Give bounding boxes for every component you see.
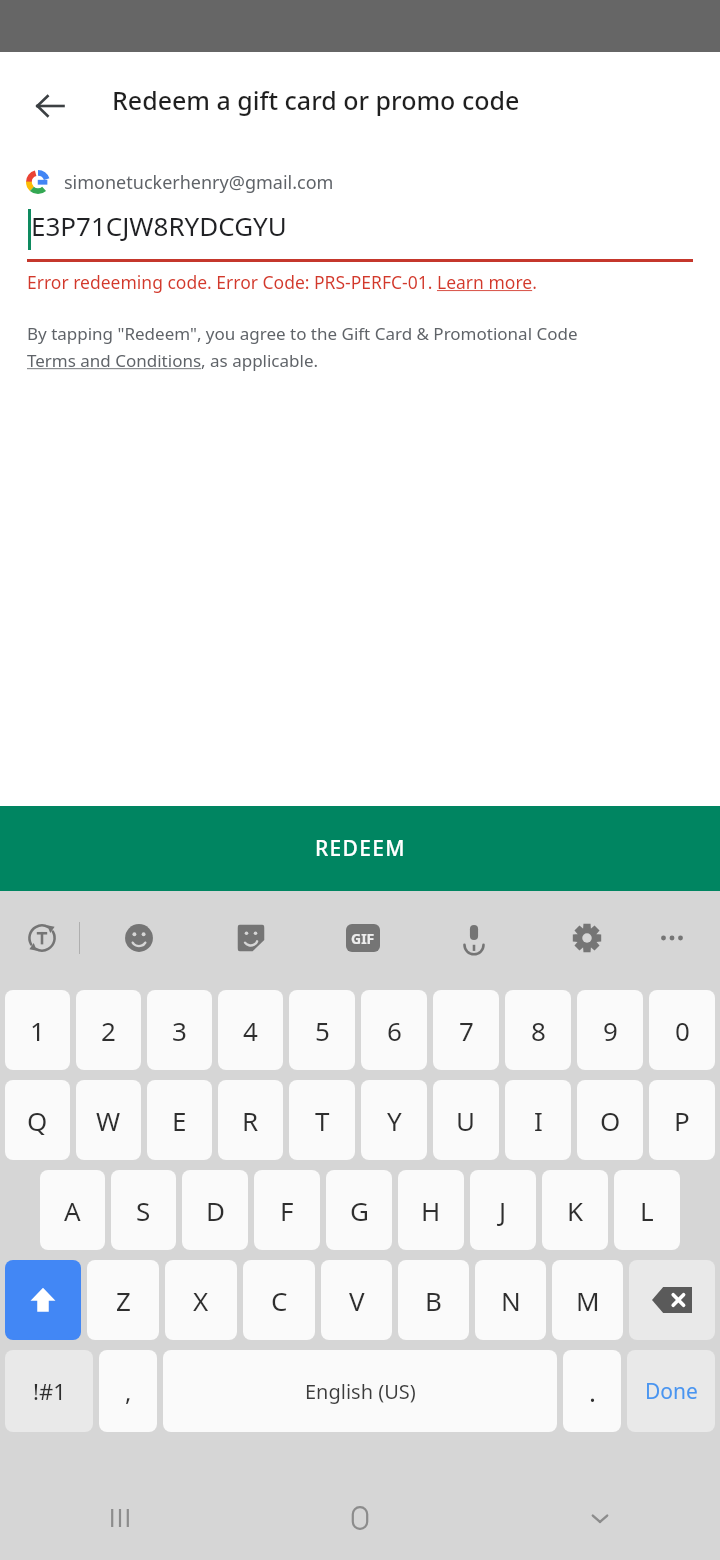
button[interactable]: Recent apps	[86, 1484, 154, 1552]
button[interactable]: M	[552, 1260, 623, 1340]
staticText: T	[315, 1103, 330, 1138]
button[interactable]: !#1	[5, 1350, 93, 1432]
button[interactable]: Voice input	[450, 914, 498, 962]
button[interactable]: Y	[361, 1080, 427, 1160]
staticText: Q	[27, 1103, 48, 1138]
staticText: C	[271, 1283, 288, 1318]
staticText: REDEEM	[315, 834, 406, 863]
staticText: 5	[315, 1013, 330, 1048]
button[interactable]: Backspace	[629, 1260, 715, 1340]
staticText: A	[64, 1193, 81, 1228]
button[interactable]: Home	[326, 1484, 394, 1552]
staticText: D	[206, 1193, 225, 1228]
button[interactable]: F	[254, 1170, 320, 1250]
staticText: H	[421, 1193, 441, 1228]
button[interactable]: .	[563, 1350, 621, 1432]
staticText: English (US)	[305, 1378, 416, 1405]
button[interactable]: D	[182, 1170, 248, 1250]
staticText: Z	[116, 1283, 131, 1318]
button[interactable]: K	[542, 1170, 608, 1250]
button[interactable]: C	[243, 1260, 315, 1340]
staticText: 1	[30, 1013, 45, 1048]
button[interactable]: Keyboard settings	[563, 914, 611, 962]
button[interactable]: GIF	[339, 914, 387, 962]
staticText: E3P71CJW8RYDCGYU	[31, 208, 287, 243]
button[interactable]: Translate	[18, 914, 66, 962]
staticText: M	[576, 1283, 600, 1318]
button[interactable]: X	[165, 1260, 237, 1340]
button[interactable]: L	[614, 1170, 680, 1250]
button[interactable]: English (US)	[163, 1350, 557, 1432]
button[interactable]: 1	[5, 990, 70, 1070]
staticText: 6	[387, 1013, 402, 1048]
staticText: 0	[675, 1013, 690, 1048]
button[interactable]: H	[398, 1170, 464, 1250]
button[interactable]: J	[470, 1170, 536, 1250]
button[interactable]: Shift	[5, 1260, 81, 1340]
staticText: J	[499, 1193, 507, 1228]
button[interactable]: ,	[99, 1350, 157, 1432]
button[interactable]: 2	[76, 990, 141, 1070]
staticText: B	[425, 1283, 442, 1318]
staticText: !#1	[33, 1376, 66, 1406]
staticText: Done	[645, 1377, 698, 1406]
staticText: N	[501, 1283, 521, 1318]
staticText: F	[280, 1193, 294, 1228]
staticText: 9	[603, 1013, 618, 1048]
button[interactable]: REDEEM	[0, 806, 720, 891]
button[interactable]: 4	[218, 990, 283, 1070]
button[interactable]: Back	[22, 78, 78, 134]
button[interactable]: W	[76, 1080, 141, 1160]
button[interactable]: 0	[649, 990, 715, 1070]
button[interactable]: 3	[147, 990, 212, 1070]
staticText: GIF	[351, 929, 375, 948]
button[interactable]: 8	[505, 990, 571, 1070]
staticText: E	[172, 1103, 187, 1138]
button[interactable]: O	[577, 1080, 643, 1160]
button[interactable]: I	[505, 1080, 571, 1160]
staticText: Redeem a gift card or promo code	[112, 83, 520, 117]
button[interactable]: N	[475, 1260, 546, 1340]
staticText: 8	[531, 1013, 546, 1048]
staticText: 4	[243, 1013, 258, 1048]
button[interactable]: E3P71CJW8RYDCGYU	[0, 204, 720, 262]
staticText: L	[640, 1193, 654, 1228]
staticText: 2	[101, 1013, 116, 1048]
button[interactable]: Stickers	[227, 914, 275, 962]
staticText: R	[242, 1103, 259, 1138]
button[interactable]: Emoji	[115, 914, 163, 962]
staticText: .	[589, 1374, 596, 1409]
button[interactable]: R	[218, 1080, 283, 1160]
button[interactable]: B	[398, 1260, 469, 1340]
button[interactable]: T	[289, 1080, 355, 1160]
staticText: Y	[387, 1103, 402, 1138]
staticText: By tapping "Redeem", you agree to the Gi…	[27, 322, 578, 372]
staticText: simonetuckerhenry@gmail.com	[64, 170, 334, 195]
button[interactable]: V	[321, 1260, 392, 1340]
staticText: G	[350, 1193, 369, 1228]
staticText: I	[534, 1103, 543, 1138]
button[interactable]: S	[111, 1170, 176, 1250]
button[interactable]: 6	[361, 990, 427, 1070]
staticText: X	[193, 1283, 209, 1318]
button[interactable]: A	[40, 1170, 105, 1250]
button[interactable]: P	[649, 1080, 715, 1160]
button[interactable]: U	[433, 1080, 499, 1160]
staticText: S	[136, 1193, 151, 1228]
button[interactable]: 9	[577, 990, 643, 1070]
button[interactable]: 5	[289, 990, 355, 1070]
button[interactable]: Q	[5, 1080, 70, 1160]
button[interactable]: Done	[627, 1350, 715, 1432]
button[interactable]: G	[326, 1170, 392, 1250]
button[interactable]: By tapping "Redeem", you agree to the Gi…	[27, 322, 684, 372]
button[interactable]: Error redeeming code. Error Code: PRS-PE…	[27, 270, 720, 294]
staticText: 7	[459, 1013, 474, 1048]
button[interactable]: Hide keyboard	[566, 1484, 634, 1552]
staticText: ,	[125, 1375, 132, 1408]
button[interactable]: Z	[87, 1260, 159, 1340]
staticText: O	[600, 1103, 621, 1138]
button[interactable]: 7	[433, 990, 499, 1070]
button[interactable]: E	[147, 1080, 212, 1160]
button[interactable]: More options	[648, 914, 696, 962]
staticText: U	[456, 1103, 476, 1138]
